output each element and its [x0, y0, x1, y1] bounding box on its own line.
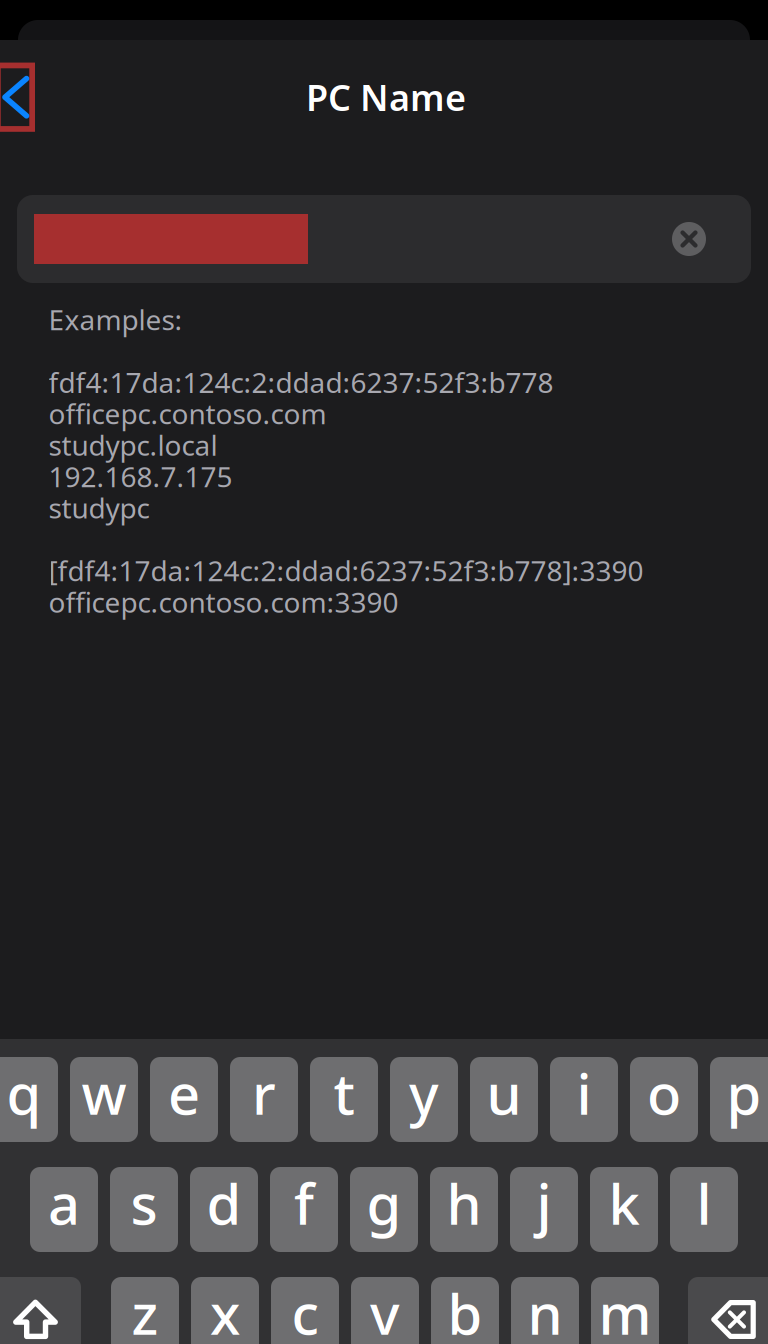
button[interactable]: i	[550, 1057, 618, 1142]
button[interactable]: o	[630, 1057, 698, 1142]
staticText: 192.168.7.175	[48, 458, 232, 495]
staticText: f	[294, 1166, 314, 1240]
button[interactable]: f	[270, 1167, 338, 1252]
staticText: g	[366, 1166, 401, 1240]
staticText: m	[598, 1276, 651, 1344]
button[interactable]: x	[191, 1277, 259, 1344]
button[interactable]: k	[590, 1167, 658, 1252]
button[interactable]: t	[310, 1057, 378, 1142]
button[interactable]: s	[110, 1167, 178, 1252]
staticText: u	[486, 1056, 521, 1130]
staticText: d	[206, 1166, 241, 1240]
button[interactable]: n	[511, 1277, 579, 1344]
staticText: Examples:	[48, 301, 182, 338]
staticText: officepc.contoso.com	[48, 395, 326, 432]
staticText: l	[696, 1166, 711, 1240]
button[interactable]	[17, 195, 751, 283]
button[interactable]: j	[510, 1167, 578, 1252]
staticText: studypc.local	[48, 426, 217, 463]
staticText: r	[252, 1056, 276, 1130]
staticText: t	[333, 1056, 354, 1130]
button[interactable]: b	[431, 1277, 499, 1344]
staticText: b	[447, 1276, 482, 1344]
staticText: officepc.contoso.com:3390	[48, 583, 398, 620]
button[interactable]: h	[430, 1167, 498, 1252]
button[interactable]: l	[670, 1167, 738, 1252]
staticText: PC Name	[306, 73, 466, 121]
staticText: n	[527, 1276, 562, 1344]
staticText: studypc	[48, 489, 149, 526]
button[interactable]: d	[190, 1167, 258, 1252]
staticText: y	[409, 1056, 439, 1130]
button[interactable]: q	[0, 1057, 58, 1142]
button[interactable]: a	[30, 1167, 98, 1252]
staticText: p	[726, 1056, 761, 1130]
button[interactable]: z	[111, 1277, 179, 1344]
staticText: q	[6, 1056, 41, 1130]
button[interactable]: Delete	[688, 1277, 768, 1344]
staticText: i	[576, 1056, 591, 1130]
button[interactable]: e	[150, 1057, 218, 1142]
button[interactable]: y	[390, 1057, 458, 1142]
button[interactable]: u	[470, 1057, 538, 1142]
staticText: o	[647, 1056, 681, 1130]
button[interactable]: r	[230, 1057, 298, 1142]
staticText: a	[48, 1166, 80, 1240]
button[interactable]: w	[70, 1057, 138, 1142]
staticText: x	[210, 1276, 240, 1344]
staticText: s	[130, 1166, 157, 1240]
button[interactable]: Clear text	[672, 222, 706, 256]
staticText: e	[168, 1056, 200, 1130]
button[interactable]: m	[591, 1277, 659, 1344]
staticText: w	[81, 1056, 126, 1130]
button[interactable]: g	[350, 1167, 418, 1252]
staticText: v	[370, 1276, 400, 1344]
staticText: c	[291, 1276, 318, 1344]
staticText: fdf4:17da:124c:2:ddad:6237:52f3:b778	[48, 363, 553, 401]
staticText: h	[446, 1166, 481, 1240]
button[interactable]: v	[351, 1277, 419, 1344]
staticText: k	[608, 1166, 639, 1240]
staticText: [fdf4:17da:124c:2:ddad:6237:52f3:b778]:3…	[48, 552, 643, 589]
button[interactable]: c	[271, 1277, 339, 1344]
button[interactable]: p	[710, 1057, 768, 1142]
staticText: z	[131, 1276, 158, 1344]
staticText: j	[536, 1166, 551, 1240]
button[interactable]: Shift	[0, 1277, 81, 1344]
button[interactable]: Back	[0, 63, 35, 132]
